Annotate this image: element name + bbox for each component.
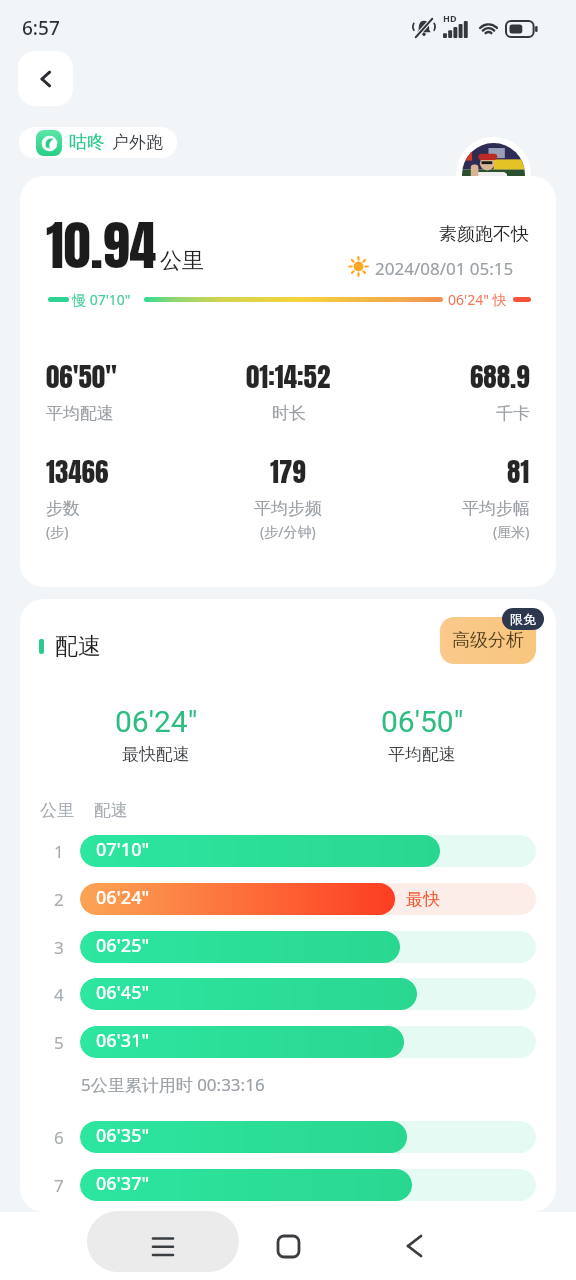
staticText: 06'50"	[46, 356, 117, 397]
staticText: 5	[54, 1031, 64, 1054]
staticText: 时长	[272, 403, 306, 424]
staticText: 688.9	[470, 356, 530, 397]
button[interactable]: 7	[20, 1169, 556, 1201]
staticText: 06'50"	[381, 704, 464, 739]
staticText: (步)	[46, 522, 69, 541]
staticText: 最快配速	[122, 744, 190, 765]
staticText: (厘米)	[493, 522, 530, 541]
staticText: HD	[443, 12, 457, 24]
staticText: 配速	[94, 800, 128, 821]
staticText: 06'37"	[96, 1171, 150, 1196]
staticText: 06'35"	[96, 1123, 150, 1148]
button[interactable]: 5	[20, 1026, 556, 1058]
staticText: 2024/08/01 05:15	[375, 257, 514, 280]
staticText: (步/分钟)	[260, 522, 316, 541]
staticText: 慢 07'10"	[72, 290, 131, 309]
button[interactable]: Back	[18, 51, 73, 106]
staticText: 06'31"	[96, 1028, 150, 1053]
staticText: 06'24" 快	[448, 290, 507, 309]
staticText: 平均配速	[388, 744, 456, 765]
staticText: 4	[54, 983, 64, 1006]
staticText: 平均步幅	[462, 498, 530, 519]
staticText: 户外跑	[112, 132, 163, 153]
button[interactable]: 3	[20, 931, 556, 963]
button[interactable]: Recent apps	[87, 1211, 239, 1272]
staticText: 平均步频	[254, 498, 322, 519]
staticText: 01:14:52	[246, 356, 331, 397]
staticText: 07'10"	[96, 837, 150, 862]
button[interactable]: Home	[268, 1226, 308, 1266]
staticText: 06'45"	[96, 980, 150, 1005]
staticText: 2	[54, 888, 64, 911]
staticText: 7	[54, 1174, 64, 1197]
staticText: 5公里累计用时 00:33:16	[81, 1073, 265, 1096]
staticText: 配速	[55, 632, 101, 661]
staticText: 公里	[160, 247, 204, 275]
staticText: 公里	[40, 800, 74, 821]
staticText: 06'24"	[115, 704, 198, 739]
staticText: 06'25"	[96, 933, 150, 958]
staticText: 平均配速	[46, 403, 114, 424]
staticText: 13466	[46, 451, 109, 492]
button[interactable]: Back	[394, 1226, 434, 1266]
staticText: 6	[54, 1126, 64, 1149]
staticText: 179	[270, 451, 306, 492]
staticText: 限免	[510, 611, 536, 627]
button[interactable]: 2	[20, 883, 556, 915]
staticText: 咕咚	[69, 131, 105, 154]
button[interactable]: 高级分析	[440, 617, 536, 664]
staticText: 10.94	[46, 204, 157, 285]
staticText: 3	[54, 936, 64, 959]
button[interactable]: Profile	[462, 143, 525, 206]
staticText: 素颜跑不快	[439, 223, 529, 246]
button[interactable]: 6	[20, 1121, 556, 1153]
staticText: 81	[507, 451, 530, 492]
staticText: 1	[54, 840, 64, 863]
staticText: 千卡	[496, 403, 530, 424]
staticText: 最快	[406, 889, 440, 910]
staticText: 步数	[46, 498, 80, 519]
button[interactable]: 1	[20, 835, 556, 867]
staticText: 06'24"	[96, 885, 150, 910]
button[interactable]: 咕咚	[19, 127, 177, 158]
button[interactable]: 4	[20, 978, 556, 1010]
staticText: 高级分析	[452, 629, 524, 652]
staticText: 6:57	[22, 15, 60, 41]
